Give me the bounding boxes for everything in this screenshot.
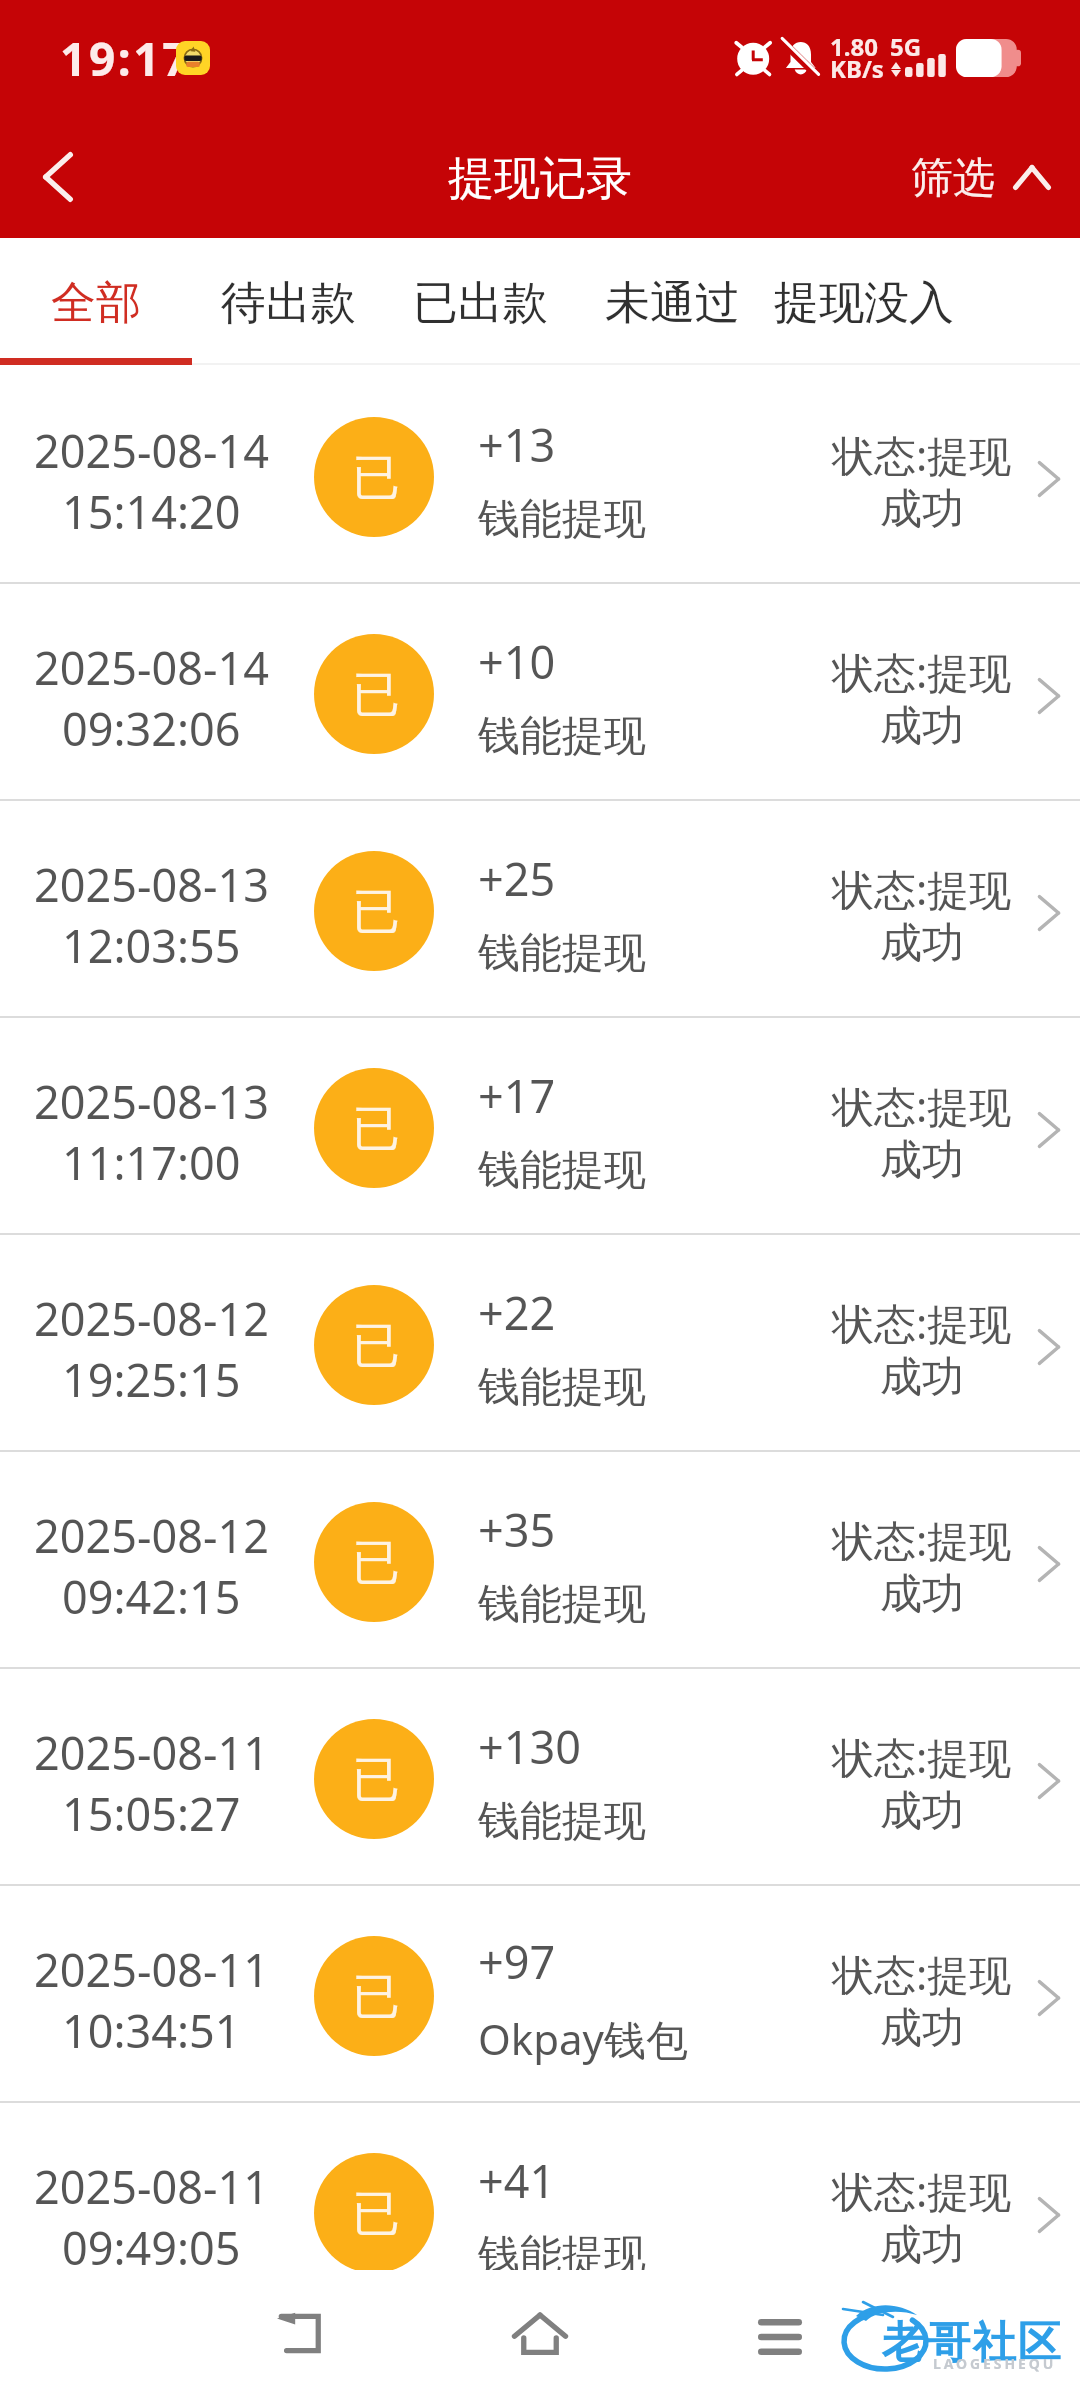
- staticText: 成功: [880, 2002, 964, 2055]
- staticText: LAOGESHEQU: [933, 2354, 1057, 2373]
- staticText: 1.80: [830, 30, 878, 63]
- staticText: 成功: [880, 1785, 964, 1838]
- button[interactable]: 2025-08-14: [0, 367, 1080, 584]
- button[interactable]: 2025-08-11: [0, 2103, 1080, 2320]
- staticText: 成功: [880, 1134, 964, 1187]
- staticText: +17: [478, 1065, 556, 1126]
- staticText: 状态:提现: [832, 1945, 1012, 2002]
- staticText: 2025-08-12: [34, 1288, 269, 1349]
- button[interactable]: 2025-08-11: [0, 1886, 1080, 2103]
- staticText: 2025-08-14: [34, 637, 269, 698]
- staticText: 12:03:55: [62, 915, 241, 976]
- staticText: +130: [478, 1716, 581, 1777]
- staticText: 已: [352, 882, 400, 942]
- staticText: 09:42:15: [62, 1566, 241, 1627]
- staticText: 已: [352, 448, 400, 508]
- staticText: +22: [478, 1282, 556, 1343]
- staticText: 成功: [880, 1568, 964, 1621]
- staticText: 成功: [880, 2219, 964, 2272]
- staticText: 已: [352, 1316, 400, 1376]
- button[interactable]: 全部: [0, 238, 192, 365]
- staticText: +97: [478, 1931, 556, 1992]
- button[interactable]: Recent apps: [700, 2270, 860, 2400]
- staticText: 成功: [880, 917, 964, 970]
- staticText: 19:17: [60, 27, 192, 90]
- staticText: +13: [478, 414, 556, 475]
- staticText: 已: [352, 2184, 400, 2244]
- staticText: 2025-08-11: [34, 1722, 269, 1783]
- staticText: 15:14:20: [62, 481, 241, 542]
- staticText: 状态:提现: [832, 1728, 1012, 1785]
- staticText: 已: [352, 1099, 400, 1159]
- staticText: 未通过: [605, 275, 740, 332]
- staticText: 提现记录: [448, 150, 632, 208]
- staticText: 提现没入: [774, 275, 954, 332]
- staticText: 成功: [880, 483, 964, 536]
- button[interactable]: 2025-08-14: [0, 584, 1080, 801]
- staticText: 钱能提现: [478, 710, 646, 763]
- staticText: 2025-08-11: [34, 1939, 269, 2000]
- staticText: 状态:提现: [832, 2162, 1012, 2219]
- staticText: 老哥社区: [882, 2316, 1063, 2370]
- staticText: 2025-08-12: [34, 1505, 269, 1566]
- staticText: +41: [478, 2150, 556, 2211]
- button[interactable]: 提现没入: [768, 238, 960, 365]
- staticText: 已: [352, 1533, 400, 1593]
- staticText: 已: [352, 1967, 400, 2027]
- staticText: +25: [478, 848, 556, 909]
- staticText: 2025-08-14: [34, 420, 269, 481]
- staticText: KB/s: [830, 52, 884, 85]
- staticText: 钱能提现: [478, 1578, 646, 1631]
- staticText: 09:32:06: [62, 698, 241, 759]
- staticText: 已出款: [413, 275, 548, 332]
- button[interactable]: Back: [220, 2270, 380, 2400]
- staticText: 成功: [880, 1351, 964, 1404]
- staticText: 19:25:15: [62, 1349, 241, 1410]
- staticText: 状态:提现: [832, 860, 1012, 917]
- staticText: 状态:提现: [832, 426, 1012, 483]
- staticText: 状态:提现: [832, 1294, 1012, 1351]
- staticText: 成功: [880, 700, 964, 753]
- staticText: 钱能提现: [478, 2229, 646, 2282]
- staticText: 11:17:00: [62, 1132, 241, 1193]
- staticText: 钱能提现: [478, 493, 646, 546]
- button[interactable]: 2025-08-13: [0, 1018, 1080, 1235]
- staticText: 状态:提现: [832, 1077, 1012, 1134]
- staticText: 2025-08-13: [34, 1071, 269, 1132]
- staticText: 钱能提现: [478, 1144, 646, 1197]
- staticText: 钱能提现: [478, 1361, 646, 1414]
- button[interactable]: 2025-08-12: [0, 1452, 1080, 1669]
- button[interactable]: 已出款: [384, 238, 576, 365]
- staticText: 筛选: [911, 152, 995, 205]
- staticText: 10:34:51: [62, 2000, 241, 2061]
- staticText: Okpay钱包: [478, 2010, 689, 2067]
- button[interactable]: Home: [460, 2270, 620, 2400]
- staticText: 钱能提现: [478, 1795, 646, 1848]
- button[interactable]: Back: [0, 120, 118, 238]
- staticText: 状态:提现: [832, 643, 1012, 700]
- staticText: +10: [478, 631, 556, 692]
- staticText: 全部: [51, 275, 141, 332]
- staticText: 09:49:05: [62, 2217, 241, 2278]
- button[interactable]: 筛选: [891, 135, 1080, 224]
- button[interactable]: 未通过: [576, 238, 768, 365]
- button[interactable]: 待出款: [192, 238, 384, 365]
- staticText: 2025-08-11: [34, 2156, 269, 2217]
- button[interactable]: 2025-08-13: [0, 801, 1080, 1018]
- button[interactable]: 2025-08-11: [0, 1669, 1080, 1886]
- staticText: 已: [352, 1750, 400, 1810]
- button[interactable]: 2025-08-12: [0, 1235, 1080, 1452]
- staticText: 已: [352, 665, 400, 725]
- staticText: 状态:提现: [832, 1511, 1012, 1568]
- staticText: 钱能提现: [478, 927, 646, 980]
- staticText: 2025-08-13: [34, 854, 269, 915]
- staticText: +35: [478, 1499, 556, 1560]
- staticText: 15:05:27: [62, 1783, 241, 1844]
- staticText: 5G: [890, 30, 922, 63]
- staticText: 待出款: [221, 275, 356, 332]
